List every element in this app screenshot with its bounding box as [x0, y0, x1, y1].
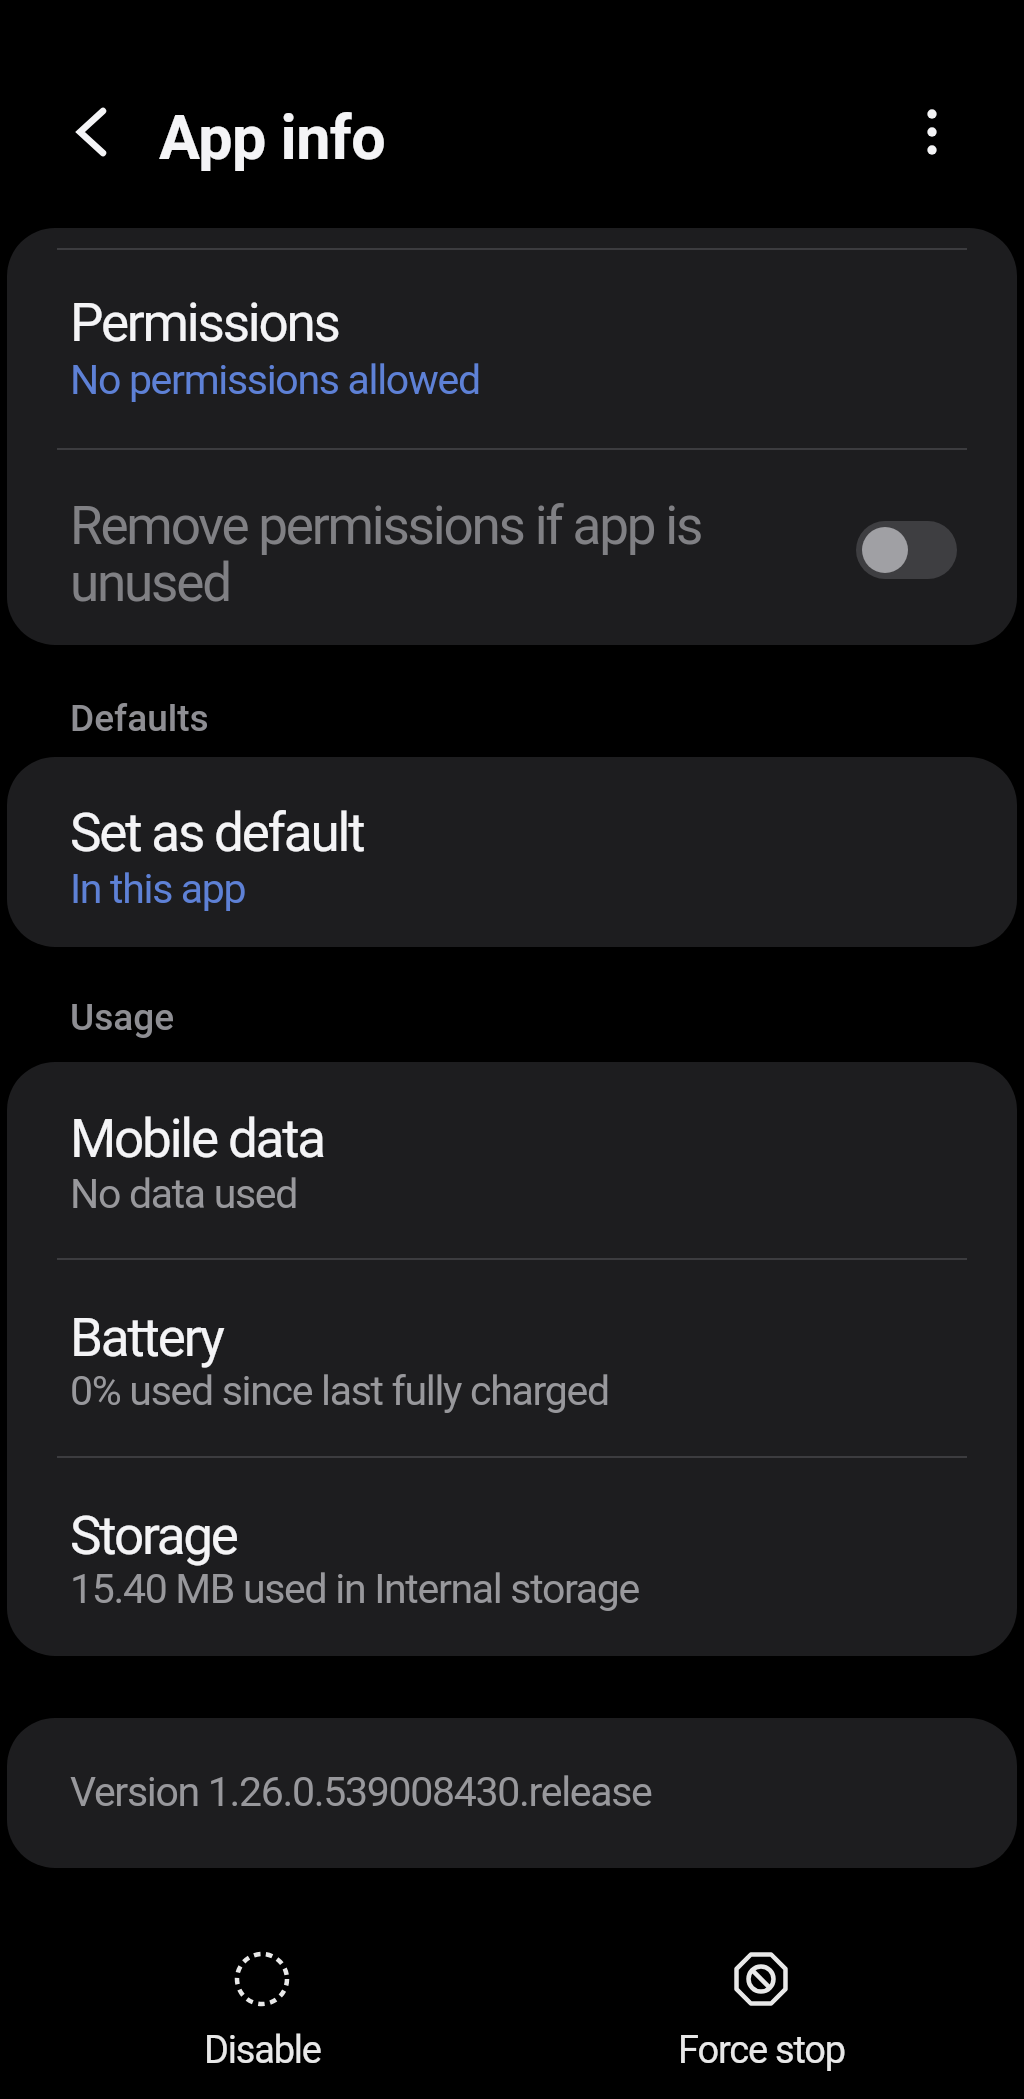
button[interactable]: Disable [142, 1926, 382, 2086]
staticText: Usage [70, 996, 175, 1039]
staticText: Permissions [70, 292, 339, 354]
staticText: Storage [70, 1505, 237, 1567]
button[interactable]: Set as default [7, 757, 1017, 947]
button[interactable]: Remove permissions if app is [7, 450, 1017, 645]
button[interactable]: Force stop [641, 1926, 881, 2086]
staticText: In this app [70, 865, 246, 913]
staticText: App info [159, 102, 386, 173]
staticText: unused [70, 552, 230, 614]
button[interactable] [56, 96, 126, 168]
staticText: Force stop [678, 2028, 845, 2073]
staticText: Remove permissions if app is [70, 495, 702, 557]
staticText: Version 1.26.0.539008430.release [70, 1768, 652, 1816]
button[interactable] [856, 521, 957, 579]
staticText: Battery [70, 1307, 223, 1369]
staticText: Disable [204, 2028, 321, 2073]
button[interactable] [902, 93, 962, 179]
staticText: Mobile data [70, 1108, 324, 1170]
button[interactable]: Permissions [7, 250, 1017, 448]
button[interactable]: Mobile data [7, 1062, 1017, 1258]
staticText: 0% used since last fully charged [70, 1367, 609, 1415]
staticText: No permissions allowed [70, 356, 480, 404]
staticText: Defaults [70, 697, 209, 740]
staticText: No data used [70, 1170, 298, 1218]
staticText: 15.40 MB used in Internal storage [70, 1565, 639, 1613]
button[interactable]: Storage [7, 1458, 1017, 1656]
staticText: Set as default [70, 802, 364, 864]
button[interactable]: Battery [7, 1260, 1017, 1456]
